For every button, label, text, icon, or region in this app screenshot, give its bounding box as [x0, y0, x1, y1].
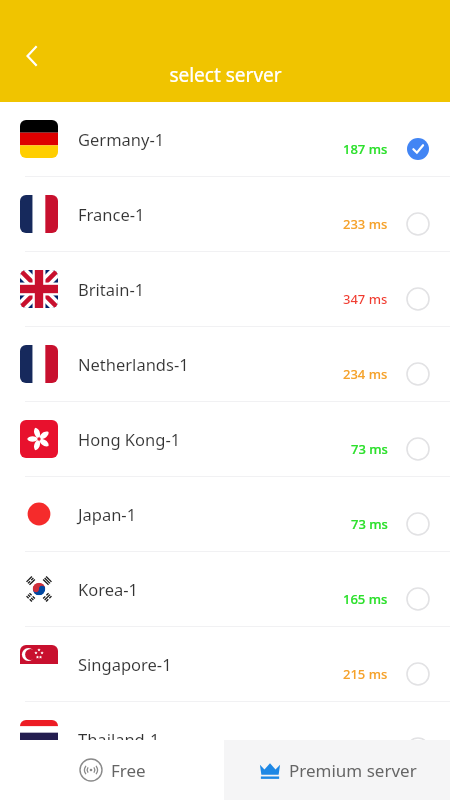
button[interactable]: Korea-1: [0, 552, 450, 626]
button[interactable]: Free: [0, 740, 224, 800]
staticText: select server: [169, 62, 282, 88]
button[interactable]: Thailand-1: [0, 702, 450, 776]
button[interactable]: France-1: [0, 177, 450, 251]
staticText: 165 ms: [343, 590, 388, 608]
staticText: Korea-1: [78, 578, 343, 600]
button[interactable]: Netherlands-1: [0, 327, 450, 401]
button[interactable]: Back: [4, 28, 60, 84]
button[interactable]: Britain-1: [0, 252, 450, 326]
button[interactable]: Hong Kong-1: [0, 402, 450, 476]
staticText: 234 ms: [343, 365, 388, 383]
staticText: 187 ms: [343, 140, 388, 158]
staticText: 73 ms: [351, 515, 388, 533]
staticText: Premium server: [289, 759, 417, 782]
staticText: 215 ms: [343, 665, 388, 683]
staticText: Singapore-1: [78, 653, 343, 675]
button[interactable]: Japan-1: [0, 477, 450, 551]
button[interactable]: Singapore-1: [0, 627, 450, 701]
staticText: France-1: [78, 203, 343, 225]
staticText: Thailand-1: [78, 728, 343, 750]
staticText: Netherlands-1: [78, 353, 343, 375]
staticText: Britain-1: [78, 278, 343, 300]
staticText: 347 ms: [343, 290, 388, 308]
staticText: Free: [111, 759, 146, 782]
staticText: 233 ms: [343, 215, 388, 233]
staticText: Germany-1: [78, 128, 343, 150]
staticText: Japan-1: [78, 503, 351, 525]
button[interactable]: Germany-1: [0, 102, 450, 176]
button[interactable]: Premium server: [224, 740, 450, 800]
staticText: Hong Kong-1: [78, 428, 351, 450]
staticText: 73 ms: [351, 440, 388, 458]
